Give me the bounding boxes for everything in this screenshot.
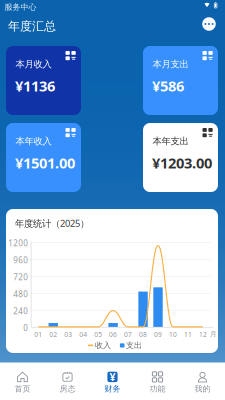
staticText: 我的 xyxy=(194,384,210,394)
staticText: 480 xyxy=(13,289,28,299)
staticText: 功能 xyxy=(149,384,165,394)
button[interactable]: 本年收入 xyxy=(6,123,81,192)
staticText: 服务中心 xyxy=(4,2,36,12)
staticText: 720 xyxy=(13,272,28,282)
button[interactable]: 房态 xyxy=(45,362,90,400)
staticText: 支出 xyxy=(126,340,142,350)
staticText: 07 xyxy=(124,330,132,339)
staticText: 年度统计（2025） xyxy=(15,217,89,229)
button[interactable]: ¥ xyxy=(90,362,135,400)
staticText: 首页 xyxy=(14,384,30,394)
staticText: 01 xyxy=(34,330,42,339)
staticText: 月 xyxy=(210,330,217,338)
staticText: 本月支出 xyxy=(152,58,188,70)
staticText: 240 xyxy=(13,306,28,316)
button[interactable]: 首页 xyxy=(0,362,45,400)
staticText: ¥1203.00 xyxy=(152,153,212,172)
button[interactable]: 本月收入 xyxy=(6,46,81,115)
staticText: 1200 xyxy=(8,238,28,248)
button[interactable]: More xyxy=(199,14,219,34)
staticText: 02 xyxy=(49,330,57,339)
button[interactable]: 本年支出 xyxy=(143,123,218,192)
staticText: ¥1136 xyxy=(15,76,55,95)
staticText: 05 xyxy=(94,330,102,339)
staticText: ¥ xyxy=(109,370,115,384)
staticText: 本年支出 xyxy=(152,135,188,147)
staticText: 0 xyxy=(23,323,28,333)
staticText: 11 xyxy=(184,330,192,339)
staticText: 06 xyxy=(109,330,117,339)
button[interactable]: 功能 xyxy=(135,362,180,400)
staticText: 08 xyxy=(139,330,147,339)
staticText: 04 xyxy=(79,330,87,339)
staticText: 财务 xyxy=(104,384,120,394)
staticText: 03 xyxy=(64,330,72,339)
staticText: 09 xyxy=(154,330,162,339)
staticText: 12 xyxy=(199,330,207,339)
staticText: 房态 xyxy=(59,384,75,394)
staticText: 10 xyxy=(169,330,177,339)
staticText: ¥1501.00 xyxy=(15,153,75,172)
staticText: 960 xyxy=(13,255,28,265)
staticText: 本月收入 xyxy=(15,58,51,70)
button[interactable]: 我的 xyxy=(180,362,225,400)
staticText: 本年收入 xyxy=(15,135,51,147)
button[interactable]: 本月支出 xyxy=(143,46,218,115)
staticText: 收入 xyxy=(95,340,111,350)
staticText: ¥586 xyxy=(152,76,184,95)
staticText: 年度汇总 xyxy=(8,19,56,34)
